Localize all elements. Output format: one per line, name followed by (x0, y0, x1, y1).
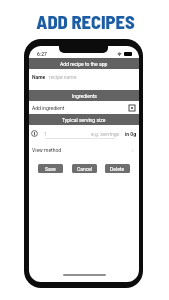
staticText: Delete (110, 166, 125, 172)
staticText: View method (32, 147, 62, 153)
staticText: Add recipe to the app (60, 61, 108, 67)
other: Open method (130, 148, 135, 153)
staticText: e.g. servings (91, 131, 120, 137)
button[interactable]: Delete (105, 164, 130, 173)
staticText: Name (32, 74, 46, 80)
button[interactable]: Save (38, 164, 63, 173)
button[interactable]: Add recipe to the app (29, 58, 139, 69)
staticText: ADD RECIPES (1, 10, 169, 32)
button[interactable]: Ingredients (29, 90, 139, 101)
staticText: Save (45, 166, 56, 172)
other: Add ingredient (129, 105, 135, 111)
button[interactable]: Cancel (72, 164, 97, 173)
button[interactable]: View method (32, 142, 135, 158)
staticText: recipe name (49, 74, 77, 80)
staticText: 6:27 (37, 51, 47, 57)
button[interactable]: Add ingredient (32, 101, 135, 114)
other: Info (31, 130, 38, 137)
staticText: Typical serving size (62, 117, 106, 123)
staticText: in 0g (125, 131, 137, 137)
staticText: Add ingredient (32, 105, 65, 111)
button[interactable]: Typical serving size (29, 114, 139, 125)
staticText: 1 (44, 131, 47, 137)
staticText: Ingredients (72, 93, 97, 99)
staticText: Cancel (77, 166, 93, 172)
